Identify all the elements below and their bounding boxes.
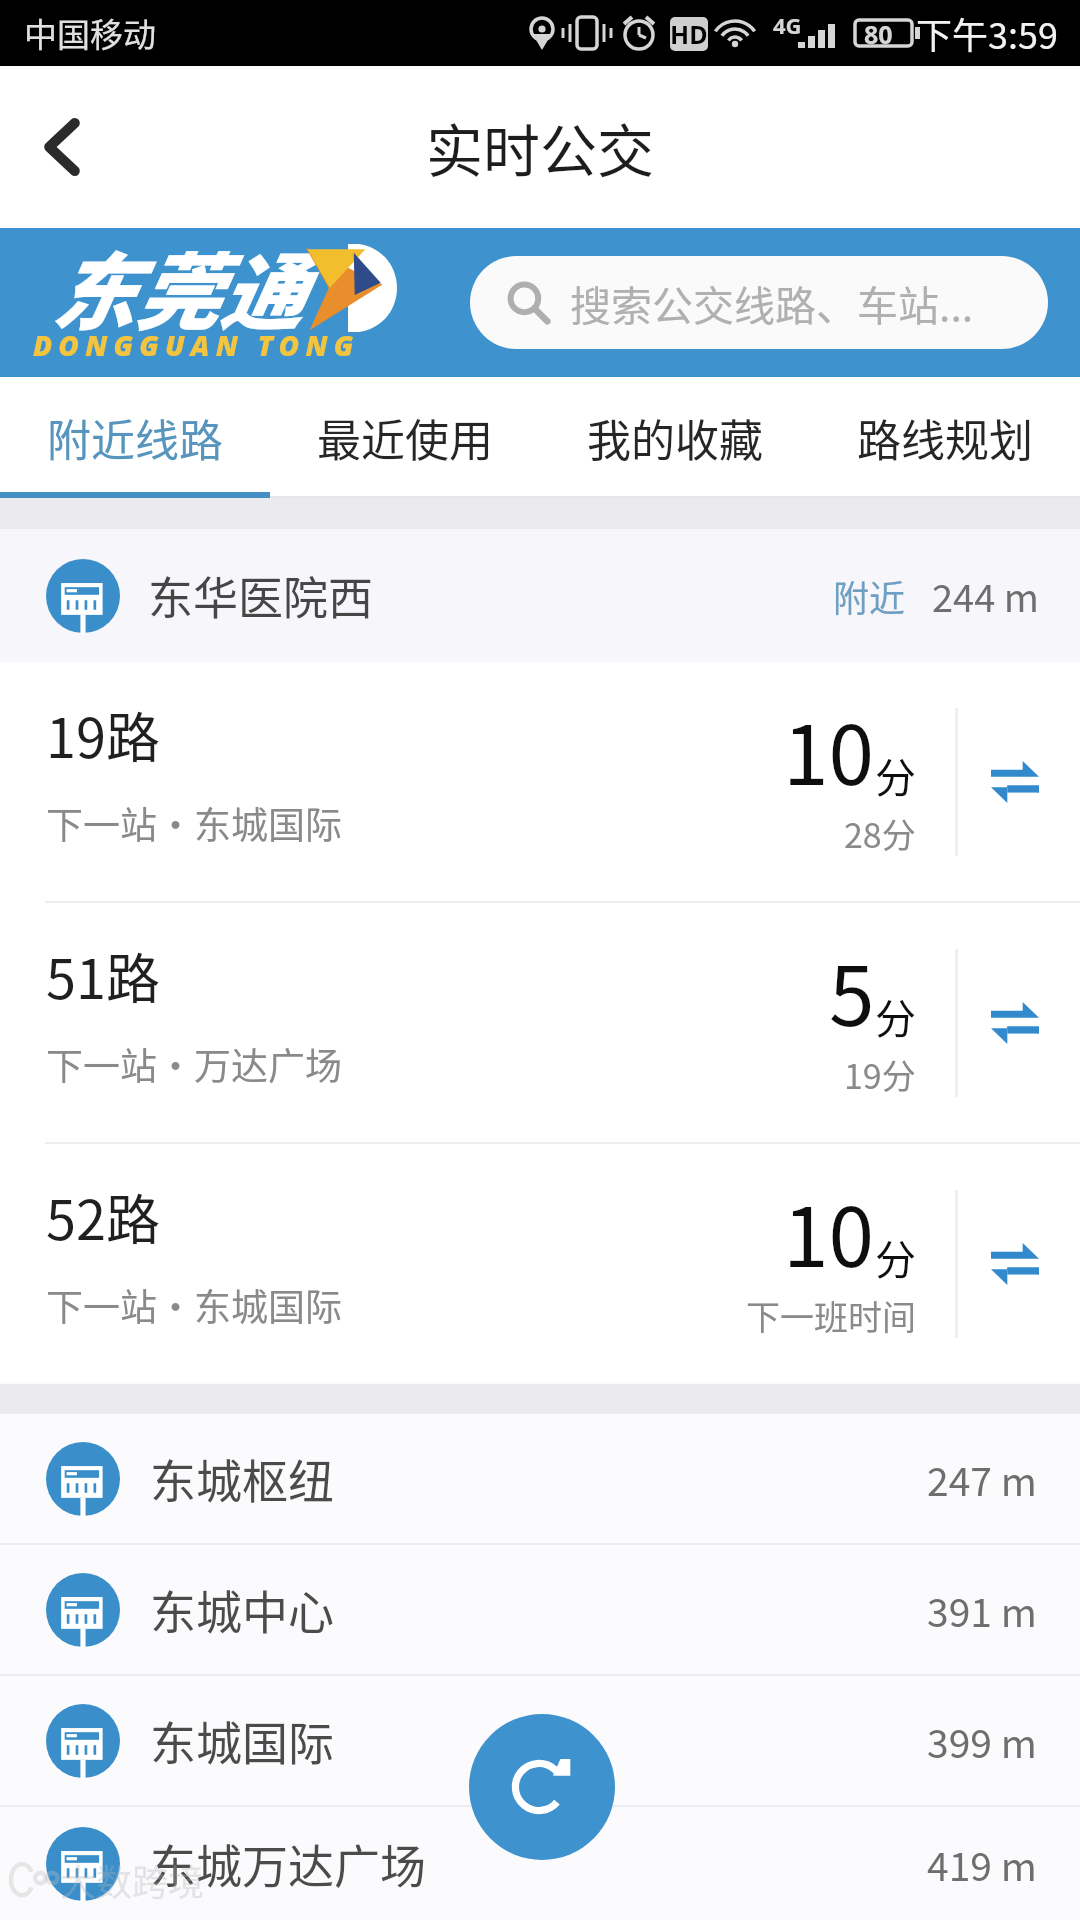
button[interactable]: 我的收藏 (540, 377, 810, 492)
button[interactable]: 路线规划 (810, 377, 1080, 492)
staticText: 28分 (844, 809, 916, 858)
staticText: 391 m (927, 1582, 1037, 1638)
staticText: 247 m (927, 1451, 1037, 1507)
staticText: 下一班时间 (746, 1291, 916, 1340)
button[interactable]: 东城枢纽 (0, 1414, 1080, 1543)
staticText: 5 (829, 931, 875, 1050)
staticText: 实时公交 (426, 106, 654, 189)
staticText: 中国移动 (24, 9, 156, 57)
staticText: 19分 (844, 1050, 916, 1099)
staticText: 419 m (927, 1836, 1037, 1892)
staticText: DONGGUAN TONG (33, 326, 360, 364)
staticText: 下一站·东城国际 (46, 796, 342, 850)
staticText: 路线规划 (857, 406, 1033, 470)
staticText: 搜索公交线路、车站... (570, 273, 974, 332)
button[interactable]: 东华医院西 (0, 529, 1080, 662)
staticText: 分 (875, 986, 916, 1045)
button[interactable]: 附近线路 (0, 377, 270, 492)
button[interactable]: Switch direction (975, 742, 1055, 822)
staticText: 下午3:59 (916, 7, 1058, 59)
staticText: 244 m (932, 568, 1039, 623)
staticText: 附近线路 (47, 406, 223, 470)
staticText: 下一站·万达广场 (46, 1037, 342, 1091)
staticText: HD (670, 17, 708, 51)
button[interactable]: Switch direction (975, 983, 1055, 1063)
button[interactable]: 最近使用 (270, 377, 540, 492)
staticText: 东莞通 (50, 226, 303, 348)
staticText: 大数跨境 (60, 1854, 205, 1906)
button[interactable]: Refresh (469, 1714, 615, 1860)
staticText: 东华医院西 (148, 563, 374, 628)
staticText: 附近 (833, 570, 906, 622)
staticText: 52路 (46, 1177, 160, 1255)
staticText: 4G (773, 10, 802, 40)
staticText: 东城万达广场 (150, 1830, 426, 1897)
staticText: 最近使用 (317, 406, 493, 470)
button[interactable]: 东城国际 (0, 1676, 1080, 1805)
staticText: 19路 (46, 695, 160, 773)
button[interactable]: 51路 (0, 903, 1080, 1142)
button[interactable]: Back (0, 66, 124, 228)
staticText: 分 (875, 1227, 916, 1286)
button[interactable]: 搜索公交线路、车站... (470, 256, 1048, 349)
staticText: 10 (783, 690, 875, 809)
staticText: 80 (864, 17, 893, 51)
staticText: 10 (783, 1172, 875, 1291)
staticText: 东城国际 (150, 1707, 334, 1774)
staticText: 东城枢纽 (150, 1445, 334, 1512)
staticText: 399 m (927, 1713, 1037, 1769)
button[interactable]: 东城中心 (0, 1545, 1080, 1674)
button[interactable]: 东城万达广场 (0, 1807, 1080, 1920)
button[interactable]: 19路 (0, 662, 1080, 901)
button[interactable]: Switch direction (975, 1224, 1055, 1304)
button[interactable]: 52路 (0, 1144, 1080, 1383)
staticText: 分 (875, 745, 916, 804)
staticText: 51路 (46, 936, 160, 1014)
staticText: 我的收藏 (587, 406, 763, 470)
staticText: 东城中心 (150, 1576, 334, 1643)
staticText: 下一站·东城国际 (46, 1278, 342, 1332)
